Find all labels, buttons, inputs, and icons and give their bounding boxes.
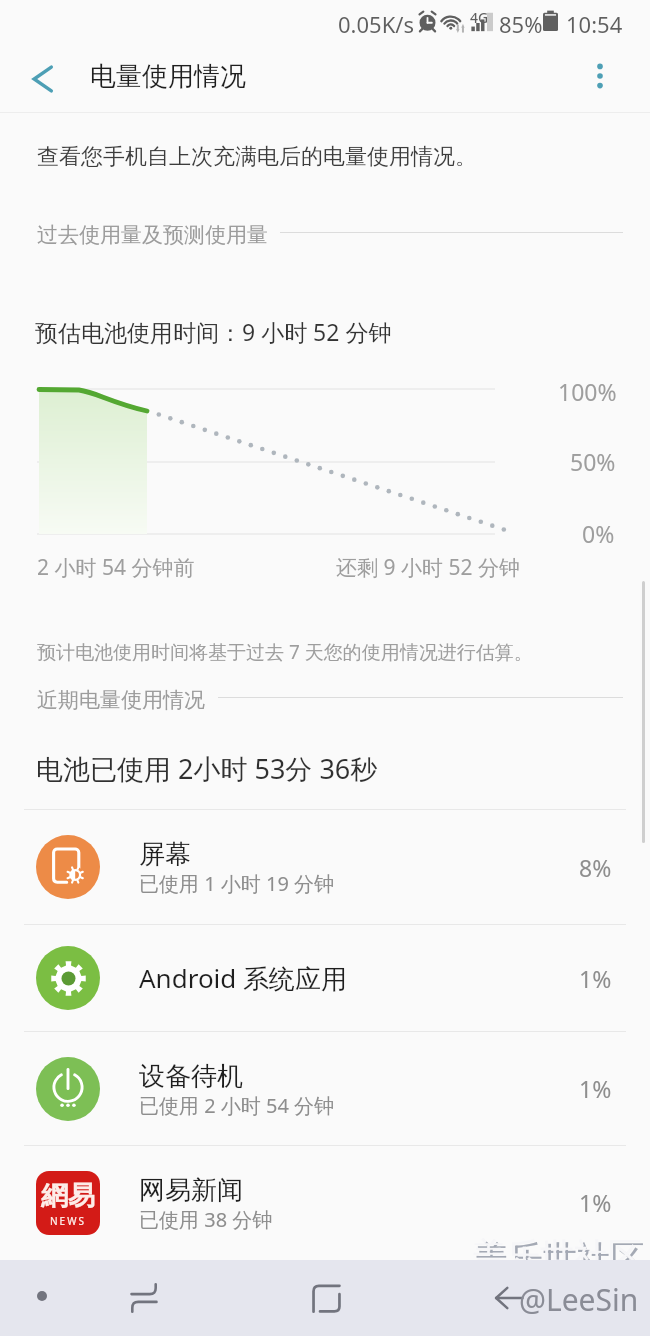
staticText: 100% xyxy=(558,376,617,407)
button[interactable]: 屏幕 xyxy=(0,810,650,924)
staticText: 50% xyxy=(570,446,616,477)
staticText: 1% xyxy=(579,1073,612,1104)
button[interactable]: Back xyxy=(474,1273,544,1323)
staticText: 预计电池使用时间将基于过去 7 天您的使用情况进行估算。 xyxy=(37,639,533,665)
staticText: 盖乐世社区 xyxy=(472,1234,642,1277)
staticText: 已使用 38 分钟 xyxy=(139,1206,273,1233)
staticText: 已使用 2 小时 54 分钟 xyxy=(139,1092,335,1119)
staticText: 4G xyxy=(470,8,489,27)
staticText: 10:54 xyxy=(566,9,623,39)
staticText: @LeeSin xyxy=(519,1279,639,1320)
staticText: NEWS xyxy=(50,1214,86,1228)
button[interactable]: Back xyxy=(18,54,67,103)
button[interactable]: Menu xyxy=(7,1271,77,1321)
staticText: 網易 xyxy=(41,1179,95,1213)
staticText: 0.05K/s xyxy=(338,9,414,39)
button[interactable]: Home xyxy=(291,1273,361,1323)
staticText: 设备待机 xyxy=(139,1060,243,1093)
staticText: 过去使用量及预测使用量 xyxy=(37,222,268,248)
staticText: 还剩 9 小时 52 分钟 xyxy=(336,553,520,582)
staticText: Android 系统应用 xyxy=(139,960,348,996)
button[interactable]: More options xyxy=(576,52,624,100)
staticText: 电池已使用 2小时 53分 36秒 xyxy=(36,750,378,787)
staticText: 查看您手机自上次充满电后的电量使用情况。 xyxy=(37,143,477,171)
staticText: 1% xyxy=(579,1187,612,1218)
staticText: 85% xyxy=(499,9,543,39)
staticText: 盖乐世社区 xyxy=(475,1237,645,1280)
button[interactable]: 網易 xyxy=(0,1146,650,1259)
button[interactable]: 设备待机 xyxy=(0,1032,650,1145)
staticText: 近期电量使用情况 xyxy=(37,687,205,713)
button[interactable]: Android 系统应用 xyxy=(0,925,650,1031)
staticText: 网易新闻 xyxy=(139,1174,243,1207)
button[interactable]: Recents xyxy=(109,1273,179,1323)
staticText: 已使用 1 小时 19 分钟 xyxy=(139,870,335,897)
staticText: 屏幕 xyxy=(139,838,191,871)
staticText: 1% xyxy=(579,963,612,994)
staticText: 预估电池使用时间：9 小时 52 分钟 xyxy=(35,316,392,347)
staticText: 电量使用情况 xyxy=(90,60,246,93)
staticText: 8% xyxy=(579,852,612,883)
staticText: 2 小时 54 分钟前 xyxy=(37,553,195,582)
staticText: 0% xyxy=(582,518,615,549)
